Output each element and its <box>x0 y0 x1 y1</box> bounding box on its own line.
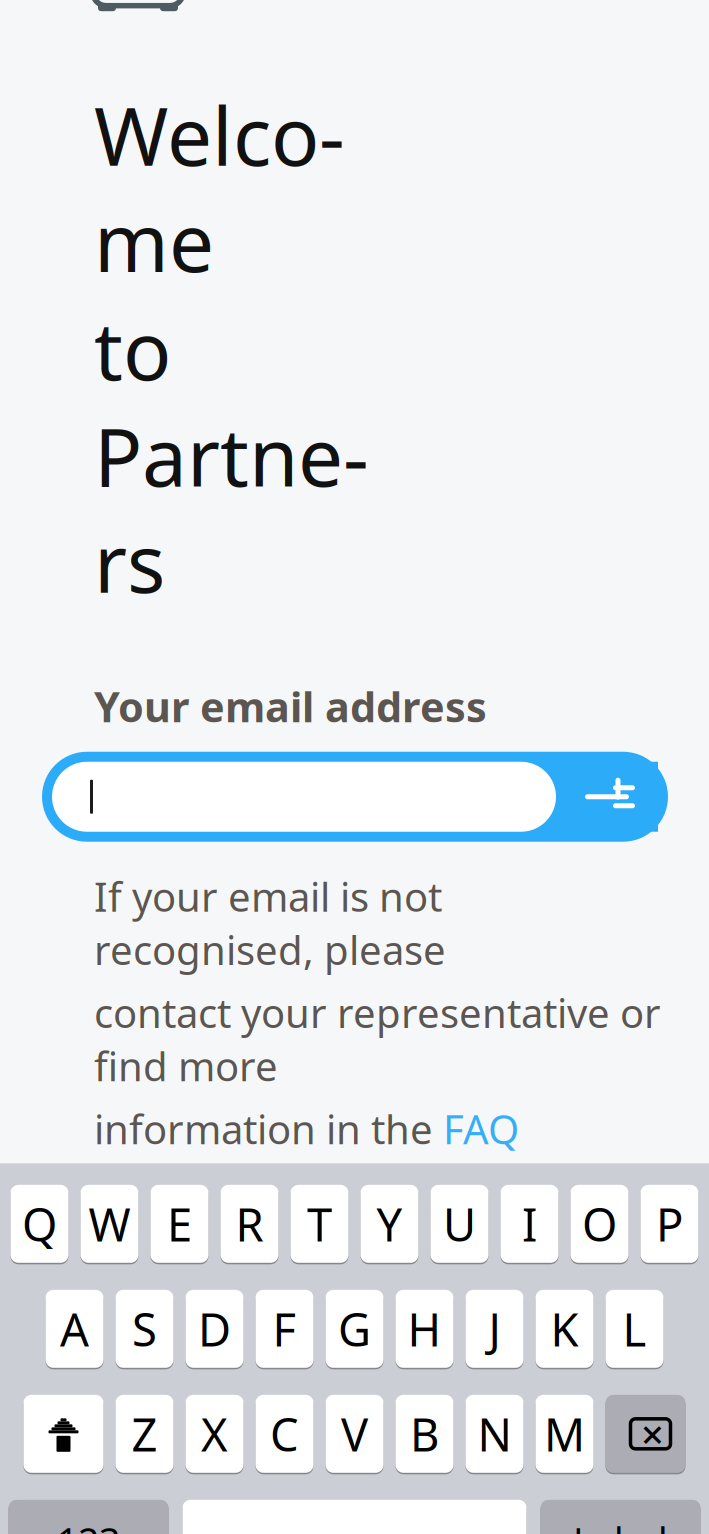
staticText: Z <box>131 1404 157 1464</box>
staticText: × <box>641 1407 664 1460</box>
staticText: R <box>235 1194 263 1254</box>
button[interactable]: B <box>395 1393 453 1474</box>
button[interactable]: S <box>115 1288 173 1369</box>
staticText: U <box>443 1194 476 1254</box>
button[interactable]: A <box>45 1288 103 1369</box>
button[interactable]: L <box>605 1288 663 1369</box>
button[interactable]: X <box>185 1393 243 1474</box>
staticText: I <box>522 1194 537 1254</box>
button[interactable]: Q <box>10 1183 68 1264</box>
button[interactable]: FAQ <box>443 1102 519 1155</box>
staticText: L <box>622 1299 646 1359</box>
button[interactable]: P <box>640 1183 698 1264</box>
button[interactable]: 123 <box>8 1498 168 1534</box>
button[interactable]: H <box>395 1288 453 1369</box>
staticText: to Partners <box>94 296 369 615</box>
staticText: J <box>488 1299 500 1359</box>
staticText: E <box>167 1194 192 1254</box>
staticText: V <box>341 1404 368 1464</box>
staticText: Your email address <box>94 679 487 734</box>
button[interactable]: I <box>500 1183 558 1264</box>
staticText: K <box>550 1299 578 1359</box>
button[interactable]: E <box>150 1183 208 1264</box>
staticText: P <box>656 1194 683 1254</box>
staticText: N <box>477 1404 511 1464</box>
button[interactable]: N <box>465 1393 523 1474</box>
staticText: A <box>60 1299 89 1359</box>
button[interactable]: D <box>185 1288 243 1369</box>
button[interactable]: U <box>430 1183 488 1264</box>
button[interactable]: O <box>570 1183 628 1264</box>
staticText: Q <box>22 1194 57 1254</box>
staticText: T <box>307 1194 332 1254</box>
button[interactable]: G <box>325 1288 383 1369</box>
staticText: Y <box>376 1194 402 1254</box>
staticText: H <box>407 1299 441 1359</box>
staticText: C <box>270 1404 299 1464</box>
staticText: If your email is not recognised, please <box>94 870 446 976</box>
button[interactable]: M <box>535 1393 593 1474</box>
staticText: O <box>582 1194 617 1254</box>
button[interactable]: C <box>255 1393 313 1474</box>
button[interactable]: T <box>290 1183 348 1264</box>
button[interactable]: R <box>220 1183 278 1264</box>
staticText: X <box>201 1404 228 1464</box>
staticText: Welcome <box>94 82 345 294</box>
button[interactable]: V <box>325 1393 383 1474</box>
button[interactable]: Continue <box>556 762 658 832</box>
button[interactable]: J <box>465 1288 523 1369</box>
staticText: information in the <box>94 1102 443 1155</box>
staticText: D <box>198 1299 231 1359</box>
staticText: B <box>410 1404 439 1464</box>
button[interactable]: Label <box>540 1498 700 1534</box>
staticText: FAQ <box>443 1102 519 1155</box>
staticText: contact your representative or find more <box>94 986 661 1092</box>
button[interactable]: K <box>535 1288 593 1369</box>
button[interactable]: F <box>255 1288 313 1369</box>
button[interactable]: Y <box>360 1183 418 1264</box>
button[interactable]: Delete <box>605 1393 685 1474</box>
button[interactable]: Z <box>115 1393 173 1474</box>
staticText: G <box>338 1299 371 1359</box>
staticText: F <box>272 1299 296 1359</box>
staticText: W <box>88 1194 130 1254</box>
staticText: M <box>544 1404 585 1464</box>
button[interactable]: Shift <box>23 1393 103 1474</box>
staticText: Label <box>573 1516 668 1534</box>
button[interactable]: W <box>80 1183 138 1264</box>
button[interactable]: space <box>182 1498 526 1534</box>
staticText: 123 <box>57 1516 120 1534</box>
staticText: S <box>132 1299 157 1359</box>
